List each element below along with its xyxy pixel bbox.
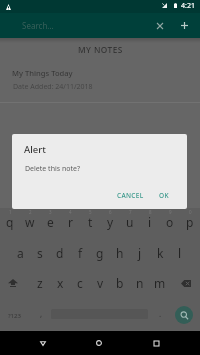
staticText: 3	[49, 209, 52, 215]
button[interactable]: l	[170, 239, 190, 270]
button[interactable]: z	[30, 270, 50, 301]
staticText: u	[126, 214, 134, 230]
staticText: m	[154, 275, 166, 291]
staticText: Delete this note?	[25, 164, 81, 174]
button[interactable]: Backspace	[176, 270, 200, 301]
button[interactable]: Home	[79, 331, 119, 355]
button[interactable]: Clear search	[150, 13, 169, 38]
button[interactable]: j	[130, 239, 150, 270]
staticText: w	[25, 214, 35, 230]
button[interactable]: g	[90, 239, 110, 270]
button[interactable]: b	[110, 270, 130, 301]
staticText: My Things Today	[12, 68, 73, 78]
staticText: ?123	[8, 312, 21, 320]
staticText: i	[148, 214, 152, 230]
staticText: 6	[109, 209, 112, 215]
button[interactable]: Back	[23, 331, 63, 355]
staticText: c	[77, 275, 83, 291]
button[interactable]: 0	[180, 208, 200, 239]
button[interactable]: OK	[154, 186, 174, 205]
staticText: x	[57, 275, 64, 291]
staticText: y	[107, 214, 114, 230]
staticText: k	[157, 245, 164, 261]
button[interactable]: 3	[40, 208, 60, 239]
staticText: MY NOTES	[78, 44, 123, 55]
button[interactable]: s	[30, 239, 50, 270]
staticText: .	[159, 308, 162, 319]
staticText: o	[166, 214, 174, 230]
staticText: 9	[169, 209, 172, 215]
staticText: v	[97, 275, 104, 291]
staticText: 4:21	[181, 1, 195, 11]
button[interactable]: 6	[100, 208, 120, 239]
button[interactable]: 7	[120, 208, 140, 239]
staticText: q	[6, 214, 14, 230]
button[interactable]: a	[10, 239, 30, 270]
button[interactable]	[0, 63, 200, 103]
button[interactable]: x	[50, 270, 70, 301]
staticText: f	[78, 245, 83, 261]
staticText: t	[88, 214, 93, 230]
button[interactable]: 2	[20, 208, 40, 239]
staticText: 1	[9, 209, 12, 215]
button[interactable]: 1	[0, 208, 20, 239]
button[interactable]: m	[150, 270, 170, 301]
staticText: 4	[69, 209, 72, 215]
staticText: d	[56, 245, 64, 261]
staticText: 8	[149, 209, 152, 215]
staticText: s	[37, 245, 43, 261]
staticText: r	[68, 214, 73, 230]
staticText: a	[17, 245, 24, 261]
staticText: Date Added: 24/11/2018	[13, 82, 93, 92]
staticText: 5	[89, 209, 92, 215]
staticText: CANCEL	[117, 191, 144, 200]
button[interactable]: Shift	[0, 270, 24, 301]
staticText: 7	[129, 209, 132, 215]
staticText: ,	[40, 308, 43, 319]
staticText: Search...	[22, 20, 54, 31]
button[interactable]: Add note	[175, 13, 194, 38]
button[interactable]: d	[50, 239, 70, 270]
staticText: Alert	[24, 143, 46, 156]
button[interactable]: 9	[160, 208, 180, 239]
button[interactable]: f	[70, 239, 90, 270]
staticText: e	[47, 214, 54, 230]
staticText: b	[116, 275, 124, 291]
staticText: OK	[159, 191, 169, 200]
staticText: 2	[29, 209, 32, 215]
button[interactable]: 8	[140, 208, 160, 239]
button[interactable]: 4	[60, 208, 80, 239]
button[interactable]: CANCEL	[112, 186, 149, 205]
staticText: j	[138, 245, 142, 261]
button[interactable]: v	[90, 270, 110, 301]
staticText: h	[116, 245, 124, 261]
button[interactable]: Recents	[136, 331, 176, 355]
button[interactable]: ?123	[2, 301, 26, 331]
button[interactable]: Search	[175, 306, 193, 324]
staticText: 0	[189, 209, 192, 215]
button[interactable]: h	[110, 239, 130, 270]
button[interactable]: k	[150, 239, 170, 270]
button[interactable]: n	[130, 270, 150, 301]
staticText: z	[37, 275, 43, 291]
staticText: g	[96, 245, 104, 261]
button[interactable]: 5	[80, 208, 100, 239]
staticText: n	[136, 275, 144, 291]
staticText: l	[178, 245, 182, 261]
staticText: p	[186, 214, 194, 230]
button[interactable]: c	[70, 270, 90, 301]
